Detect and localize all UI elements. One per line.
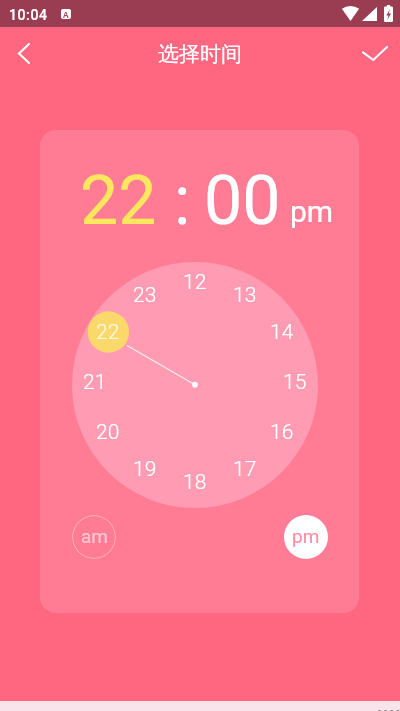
button[interactable]: am — [72, 515, 116, 559]
staticText: 23 — [133, 283, 157, 308]
button[interactable]: pm — [284, 515, 328, 559]
staticText: pm — [290, 194, 334, 229]
staticText: 选择时间 — [158, 41, 242, 67]
button[interactable]: 20 — [88, 416, 128, 448]
staticText: 17 — [233, 457, 257, 482]
staticText: 20 — [96, 420, 120, 445]
button[interactable]: 19 — [125, 453, 165, 485]
staticText: A — [63, 9, 69, 19]
button[interactable]: Back — [0, 29, 48, 77]
staticText: 13 — [233, 283, 257, 308]
button[interactable]: 23 — [125, 279, 165, 311]
button[interactable]: 00 — [204, 161, 281, 241]
staticText: 12 — [183, 270, 207, 295]
button[interactable]: 12 — [175, 266, 215, 298]
staticText: pm — [292, 525, 320, 547]
button[interactable]: 21 — [75, 366, 115, 398]
button[interactable]: 22 — [80, 161, 157, 241]
button[interactable]: 13 — [225, 279, 265, 311]
button[interactable]: 18 — [175, 466, 215, 498]
button[interactable]: Confirm — [351, 29, 399, 77]
staticText: am — [81, 525, 108, 547]
staticText: 22 — [96, 320, 120, 345]
staticText: 14 — [270, 320, 294, 345]
button[interactable]: 16 — [262, 416, 302, 448]
staticText: 16 — [270, 420, 294, 445]
staticText: 19 — [133, 457, 157, 482]
staticText: 18 — [183, 470, 207, 495]
staticText: 15 — [283, 370, 307, 395]
button[interactable]: 17 — [225, 453, 265, 485]
staticText: 21 — [83, 370, 107, 395]
button[interactable]: 15 — [275, 366, 315, 398]
staticText: 10:04 — [9, 7, 48, 23]
staticText: : — [174, 161, 191, 241]
button[interactable]: 22 — [88, 316, 128, 348]
button[interactable]: 14 — [262, 316, 302, 348]
